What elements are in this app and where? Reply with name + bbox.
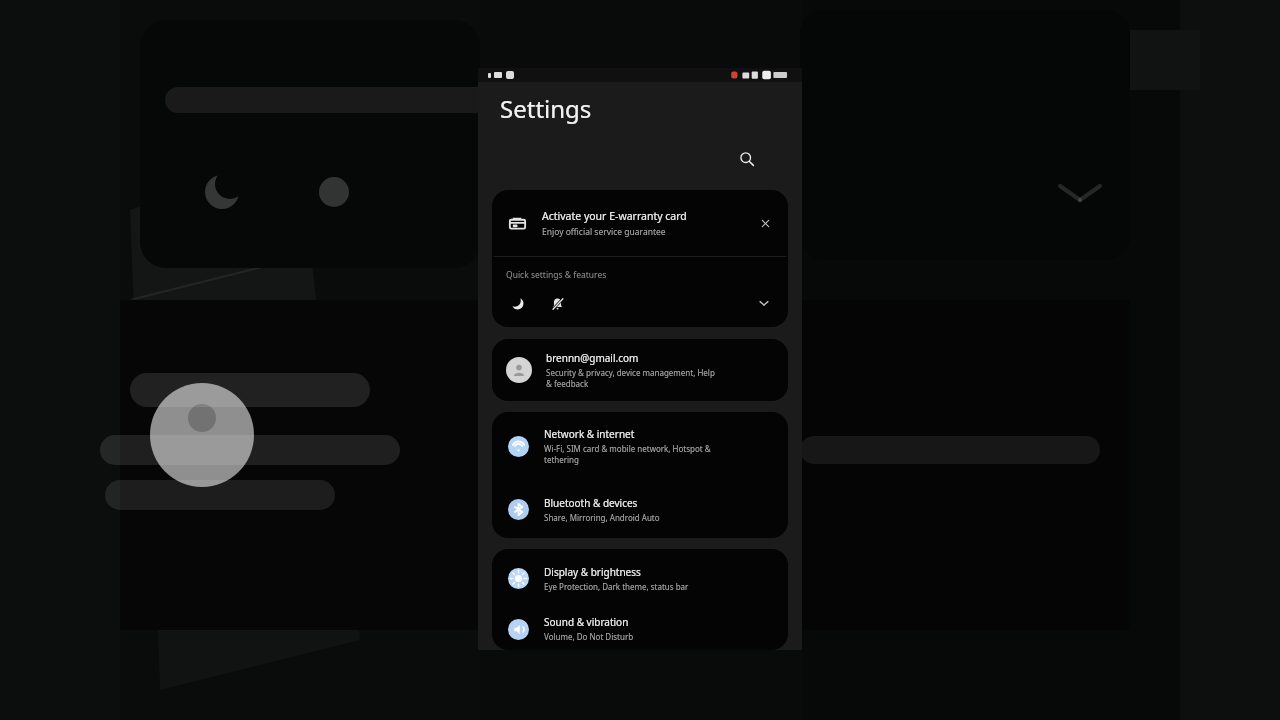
staticText: & feedback (546, 378, 589, 389)
staticText: Bluetooth & devices (544, 496, 638, 510)
button[interactable]: Activate your E-warranty card (492, 190, 788, 256)
staticText: brennn@gmail.com (546, 351, 639, 365)
button[interactable]: Quick settings & features (492, 257, 788, 327)
staticText: Share, Mirroring, Android Auto (544, 512, 660, 523)
staticText: Network & internet (544, 427, 635, 441)
button[interactable]: Search settings (730, 142, 764, 176)
staticText: Display & brightness (544, 565, 641, 579)
button[interactable]: Do not disturb (506, 292, 528, 314)
button[interactable]: Network & internet (492, 412, 788, 480)
staticText: Quick settings & features (506, 269, 607, 281)
staticText: tethering (544, 454, 579, 465)
button[interactable]: Display & brightness (492, 549, 788, 607)
staticText: Security & privacy, device management, H… (546, 367, 715, 378)
staticText: Wi-Fi, SIM card & mobile network, Hotspo… (544, 443, 711, 454)
staticText: Settings (500, 92, 592, 125)
button[interactable]: Bluetooth & devices (492, 480, 788, 538)
button[interactable]: Expand (752, 291, 776, 315)
staticText: Activate your E-warranty card (542, 209, 687, 223)
button[interactable]: Mute notifications (546, 292, 568, 314)
staticText: Eye Protection, Dark theme, status bar (544, 581, 689, 592)
button[interactable]: brennn@gmail.com (492, 339, 788, 401)
button[interactable]: Sound & vibration (492, 607, 788, 650)
staticText: Enjoy official service guarantee (542, 226, 666, 238)
staticText: Volume, Do Not Disturb (544, 631, 634, 642)
staticText: Sound & vibration (544, 615, 629, 629)
button[interactable]: Dismiss (752, 210, 778, 236)
